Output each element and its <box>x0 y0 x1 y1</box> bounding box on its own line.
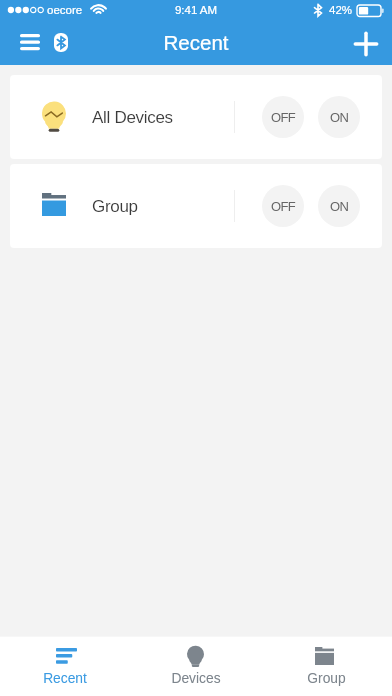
staticText: ON <box>330 110 349 125</box>
button[interactable]: ON <box>318 185 360 227</box>
staticText: OFF <box>271 110 296 125</box>
button[interactable]: Group <box>10 164 382 248</box>
staticText: Devices <box>171 671 221 686</box>
button[interactable]: OFF <box>262 185 304 227</box>
button[interactable]: Recent <box>0 637 130 696</box>
staticText: Recent <box>0 31 392 54</box>
staticText: OFF <box>271 199 296 214</box>
button[interactable]: Group <box>261 637 392 696</box>
staticText: Group <box>307 671 346 686</box>
staticText: Group <box>92 197 138 216</box>
staticText: 42% <box>329 4 353 17</box>
button[interactable]: ON <box>318 96 360 138</box>
button[interactable]: All Devices <box>10 75 382 159</box>
staticText: oecore <box>47 4 83 17</box>
button[interactable]: OFF <box>262 96 304 138</box>
staticText: Recent <box>43 671 87 686</box>
staticText: All Devices <box>92 108 173 127</box>
button[interactable]: Menu <box>10 24 50 64</box>
button[interactable]: Devices <box>130 637 261 696</box>
staticText: 9:41 AM <box>0 4 392 17</box>
staticText: ON <box>330 199 349 214</box>
button[interactable]: Add <box>348 26 384 62</box>
button[interactable]: Bluetooth <box>47 30 75 58</box>
